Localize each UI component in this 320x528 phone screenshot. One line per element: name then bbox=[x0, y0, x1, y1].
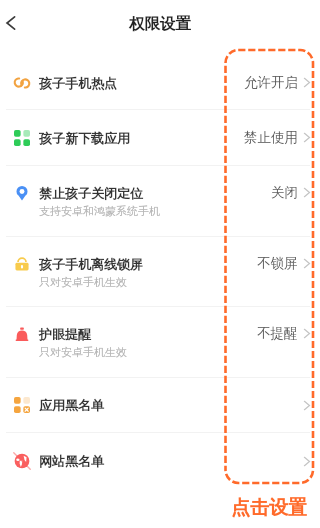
staticText: 不提醒 bbox=[257, 325, 298, 342]
staticText: 孩子新下载应用 bbox=[39, 130, 130, 146]
staticText: 孩子手机离线锁屏 bbox=[39, 256, 143, 272]
staticText: 点击设置 bbox=[231, 496, 307, 520]
staticText: 权限设置 bbox=[129, 14, 191, 34]
staticText: 不锁屏 bbox=[257, 255, 298, 272]
staticText: 孩子手机热点 bbox=[39, 75, 117, 91]
button[interactable]: 禁止孩子关闭定位 bbox=[0, 166, 320, 236]
staticText: 只对安卓手机生效 bbox=[39, 275, 127, 289]
staticText: 关闭 bbox=[271, 184, 298, 201]
button[interactable]: 应用黑名单 bbox=[0, 378, 320, 432]
staticText: 只对安卓手机生效 bbox=[39, 345, 127, 359]
staticText: 支持安卓和鸿蒙系统手机 bbox=[39, 204, 160, 218]
button[interactable]: 网站黑名单 bbox=[0, 433, 320, 488]
staticText: 护眼提醒 bbox=[39, 326, 91, 342]
button[interactable]: 护眼提醒 bbox=[0, 307, 320, 377]
button[interactable]: Back bbox=[0, 8, 30, 38]
staticText: 禁止使用 bbox=[244, 129, 298, 146]
staticText: 禁止孩子关闭定位 bbox=[39, 185, 143, 201]
button[interactable]: 孩子新下载应用 bbox=[0, 110, 320, 165]
staticText: 网站黑名单 bbox=[39, 453, 104, 469]
button[interactable]: 孩子手机离线锁屏 bbox=[0, 237, 320, 306]
button[interactable]: 孩子手机热点 bbox=[0, 55, 320, 109]
staticText: 应用黑名单 bbox=[39, 397, 104, 413]
staticText: 允许开启 bbox=[244, 74, 298, 91]
